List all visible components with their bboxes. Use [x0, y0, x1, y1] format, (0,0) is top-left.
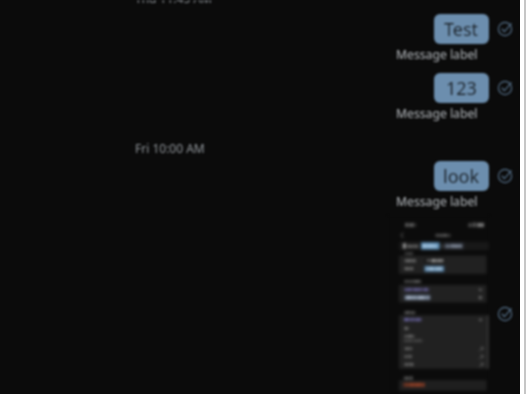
staticText: Test: [444, 17, 479, 42]
button[interactable]: [387, 215, 490, 394]
button[interactable]: look: [434, 161, 489, 191]
staticText: Thu 11:45 AM: [135, 0, 212, 6]
staticText: Fri 10:00 AM: [135, 140, 205, 156]
staticText: look: [443, 164, 480, 189]
button[interactable]: Delivered: [497, 168, 513, 184]
button[interactable]: Test: [434, 14, 489, 44]
button[interactable]: 123: [434, 73, 489, 103]
staticText: 123: [446, 76, 477, 101]
button[interactable]: Delivered: [497, 306, 513, 322]
staticText: Message label: [396, 105, 478, 122]
staticText: Message label: [396, 193, 478, 210]
staticText: Message label: [396, 46, 478, 63]
button[interactable]: Delivered: [497, 80, 513, 96]
button[interactable]: Delivered: [497, 21, 513, 37]
